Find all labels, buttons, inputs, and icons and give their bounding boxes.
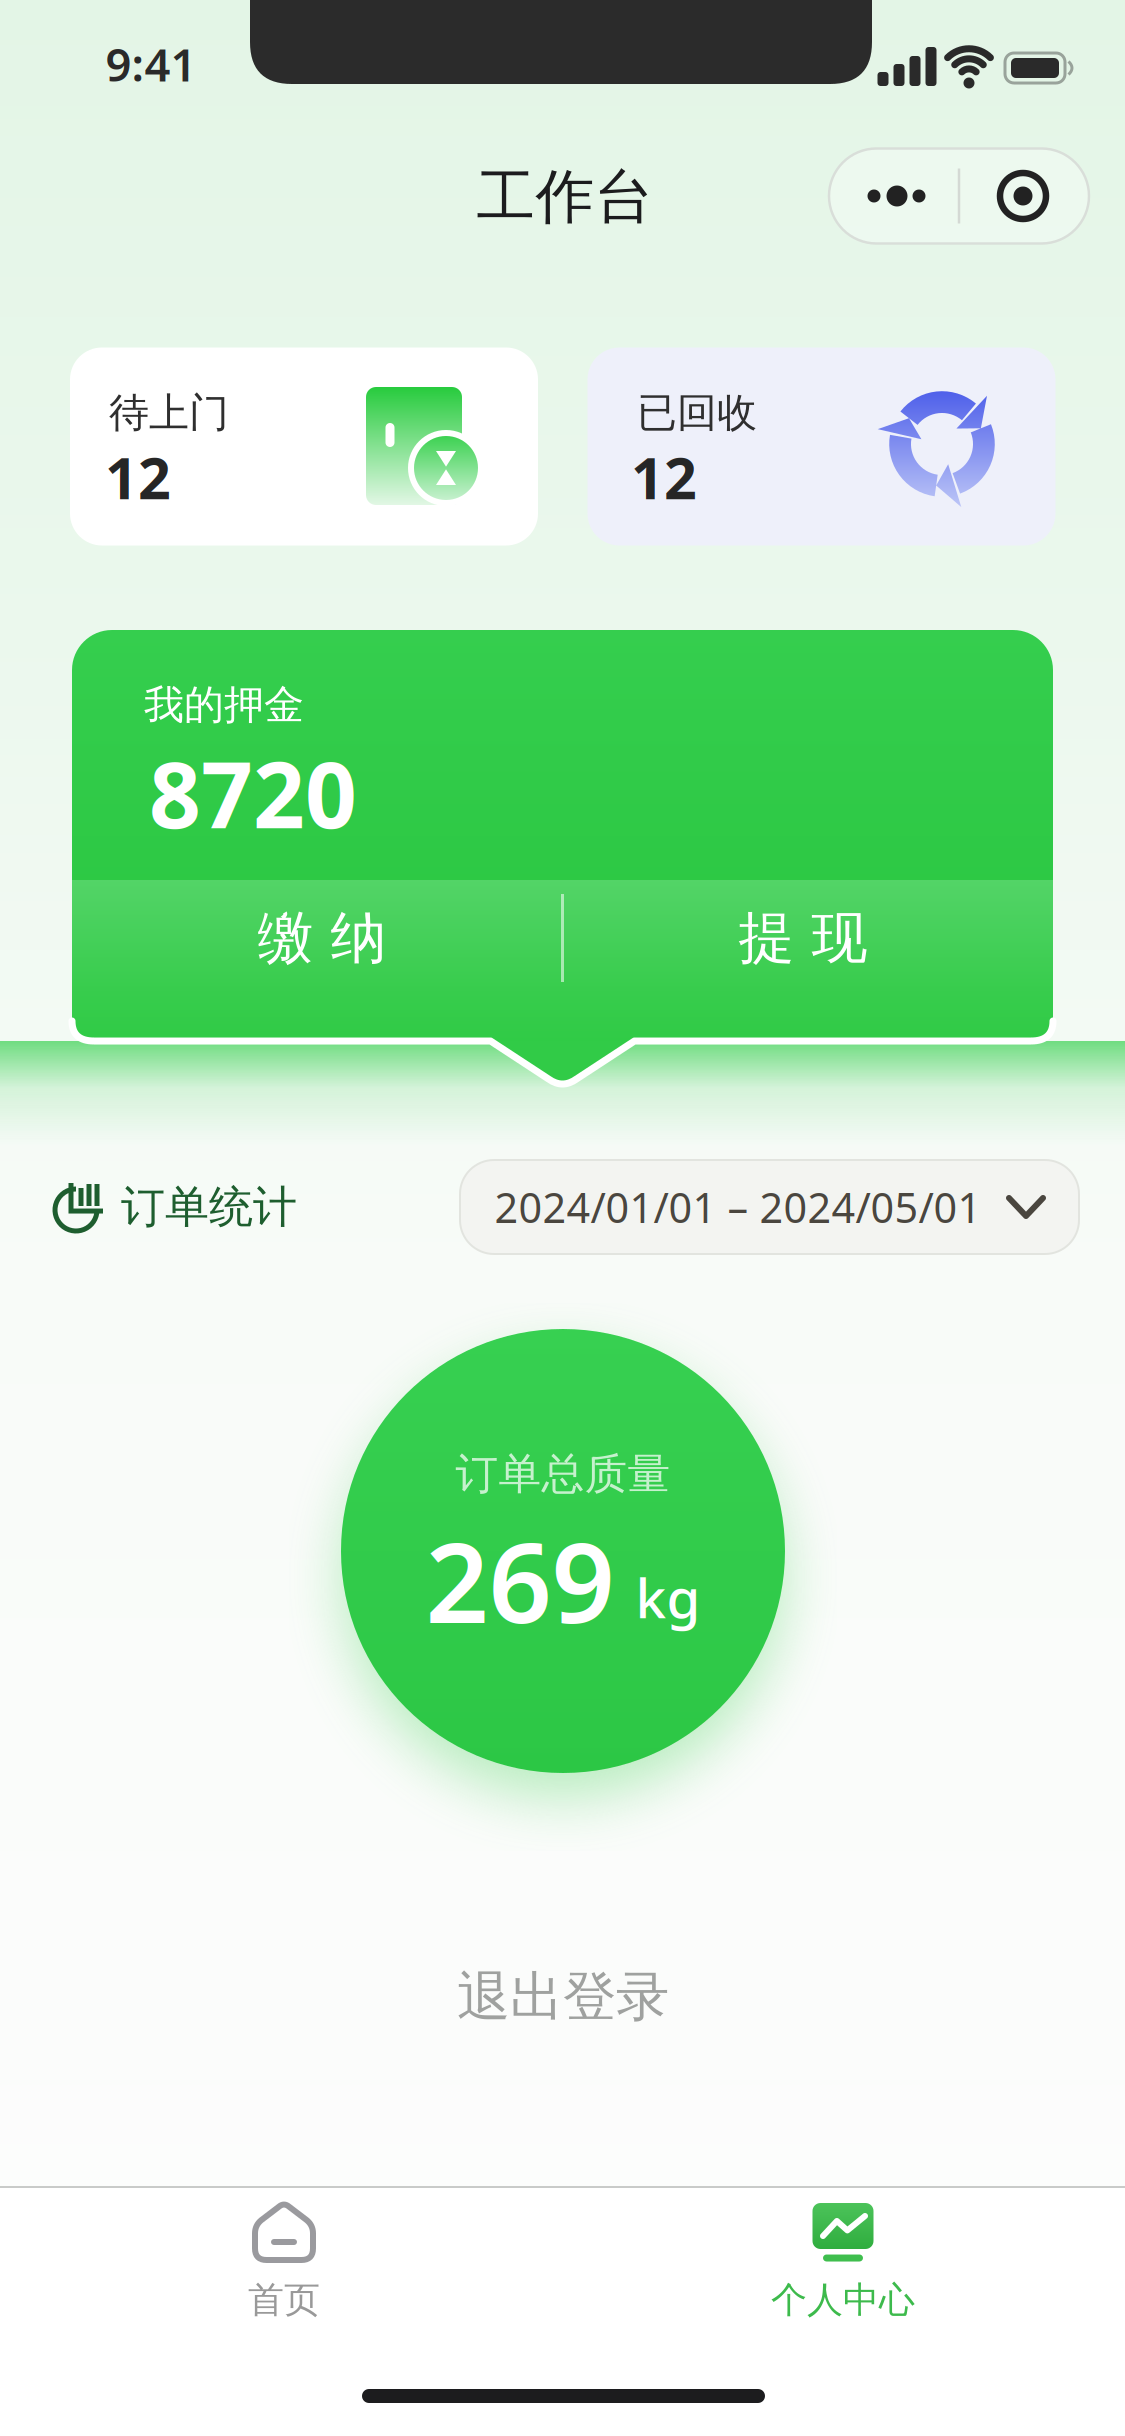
staticText: 工作台 — [476, 161, 653, 233]
button[interactable]: 退出登录 — [363, 1942, 763, 2052]
staticText: 已回收 — [637, 388, 757, 437]
staticText: 订单统计 — [121, 1180, 297, 1234]
button[interactable]: 提 现 — [563, 863, 1043, 1013]
staticText: 个人中心 — [771, 2278, 915, 2322]
button[interactable]: Select date range — [460, 1160, 1079, 1254]
staticText: 首页 — [248, 2278, 320, 2322]
staticText: 订单总质量 — [455, 1448, 670, 1500]
staticText: 退出登录 — [457, 1964, 669, 2030]
button[interactable]: Close — [958, 148, 1088, 243]
staticText: 我的押金 — [144, 680, 304, 729]
staticText: 提 现 — [738, 904, 867, 972]
button[interactable]: More — [829, 148, 959, 243]
staticText: 12 — [631, 439, 697, 515]
button[interactable]: 首页 — [144, 2186, 424, 2366]
button[interactable]: 个人中心 — [703, 2186, 983, 2366]
staticText: 缴 纳 — [257, 904, 386, 972]
staticText: 2024/01/01 – 2024/05/01 — [494, 1180, 981, 1234]
staticText: 9:41 — [105, 34, 196, 94]
staticText: 12 — [105, 439, 171, 515]
staticText: 269 — [425, 1506, 614, 1653]
staticText: 8720 — [149, 733, 357, 853]
staticText: 待上门 — [109, 388, 229, 437]
button[interactable]: 缴 纳 — [82, 863, 562, 1013]
staticText: kg — [635, 1561, 700, 1633]
